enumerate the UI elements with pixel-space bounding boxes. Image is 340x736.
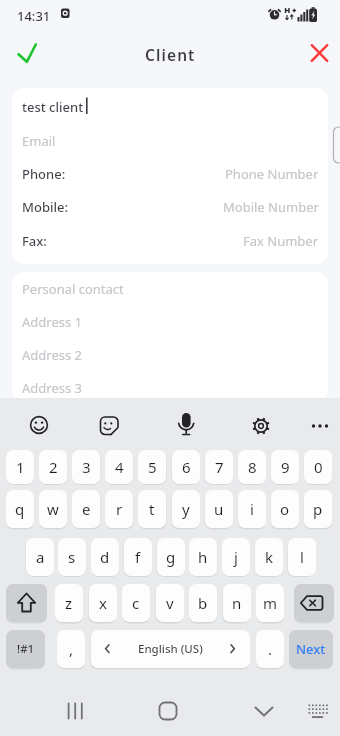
staticText: p	[313, 499, 323, 519]
button[interactable]	[12, 40, 42, 68]
staticText: 7	[215, 457, 224, 477]
button[interactable]	[12, 90, 328, 123]
button[interactable]	[304, 410, 336, 442]
button[interactable]: c	[122, 584, 150, 622]
staticText: test client	[22, 98, 84, 116]
button[interactable]	[55, 693, 95, 729]
staticText: x	[99, 593, 107, 613]
staticText: Address 2	[22, 346, 83, 364]
staticText: Personal contact	[22, 280, 124, 298]
staticText: English (US)	[138, 641, 203, 657]
staticText: w	[47, 499, 59, 519]
staticText: l	[300, 547, 304, 567]
button[interactable]: e	[72, 490, 100, 528]
button[interactable]: 4	[105, 450, 133, 484]
staticText: Mobile:	[22, 198, 68, 216]
button[interactable]: r	[105, 490, 133, 528]
button[interactable]: q	[6, 490, 34, 528]
button[interactable]: 2	[39, 450, 67, 484]
button[interactable]	[93, 410, 125, 442]
button[interactable]: 8	[238, 450, 266, 484]
staticText: Mobile Number	[223, 198, 319, 216]
staticText: Phone:	[22, 165, 66, 183]
button[interactable]: l	[288, 538, 316, 576]
button[interactable]: !#1	[6, 630, 45, 668]
staticText: Fax:	[22, 232, 47, 250]
staticText: Email	[22, 132, 56, 150]
staticText: 9	[281, 457, 290, 477]
button[interactable]: g	[157, 538, 185, 576]
button[interactable]	[148, 693, 188, 729]
button[interactable]: p	[304, 490, 332, 528]
staticText: 1	[16, 457, 25, 477]
button[interactable]: y	[172, 490, 200, 528]
staticText: r	[116, 499, 123, 519]
button[interactable]: 5	[138, 450, 166, 484]
staticText: q	[15, 499, 25, 519]
button[interactable]: n	[223, 584, 251, 622]
staticText: Next	[296, 640, 326, 658]
button[interactable]: z	[55, 584, 83, 622]
button[interactable]: f	[124, 538, 152, 576]
staticText: ,	[69, 639, 74, 659]
button[interactable]: x	[89, 584, 117, 622]
staticText: Fax Number	[243, 232, 319, 250]
button[interactable]: t	[138, 490, 166, 528]
button[interactable]	[23, 410, 55, 442]
staticText: n	[232, 593, 242, 613]
button[interactable]	[12, 157, 328, 190]
staticText: i	[250, 499, 254, 519]
button[interactable]: i	[238, 490, 266, 528]
staticText: 2	[49, 457, 58, 477]
button[interactable]: h	[189, 538, 217, 576]
button[interactable]	[306, 40, 334, 68]
button[interactable]	[91, 630, 250, 668]
button[interactable]: 9	[271, 450, 299, 484]
button[interactable]: .	[256, 630, 284, 668]
button[interactable]: k	[255, 538, 283, 576]
button[interactable]	[12, 223, 328, 256]
button[interactable]: j	[222, 538, 250, 576]
button[interactable]: 0	[304, 450, 332, 484]
button[interactable]: v	[156, 584, 184, 622]
button[interactable]	[12, 190, 328, 223]
button[interactable]: a	[26, 538, 54, 576]
staticText: e	[82, 499, 91, 519]
staticText: j	[234, 547, 238, 567]
button[interactable]: w	[39, 490, 67, 528]
staticText: g	[166, 547, 176, 567]
button[interactable]	[244, 693, 284, 729]
button[interactable]	[294, 584, 334, 622]
button[interactable]	[245, 410, 277, 442]
staticText: 6	[182, 457, 191, 477]
staticText: u	[214, 499, 224, 519]
staticText: m	[263, 593, 278, 613]
staticText: b	[198, 593, 208, 613]
staticText: t	[149, 499, 155, 519]
button[interactable]: 6	[172, 450, 200, 484]
button[interactable]	[170, 410, 202, 442]
button[interactable]: Next	[289, 630, 333, 668]
staticText: Phone Number	[225, 165, 319, 183]
staticText: o	[280, 499, 290, 519]
button[interactable]: 7	[205, 450, 233, 484]
staticText: Address 3	[22, 379, 83, 397]
staticText: c	[132, 593, 140, 613]
button[interactable]	[300, 695, 334, 727]
staticText: k	[265, 547, 274, 567]
button[interactable]	[12, 124, 328, 157]
button[interactable]: m	[256, 584, 284, 622]
button[interactable]: b	[189, 584, 217, 622]
button[interactable]: 3	[72, 450, 100, 484]
button[interactable]: d	[91, 538, 119, 576]
staticText: a	[36, 547, 45, 567]
staticText: y	[182, 499, 190, 519]
button[interactable]	[6, 584, 47, 622]
button[interactable]: o	[271, 490, 299, 528]
button[interactable]: u	[205, 490, 233, 528]
staticText: v	[166, 593, 174, 613]
button[interactable]: s	[58, 538, 86, 576]
button[interactable]: 1	[6, 450, 34, 484]
staticText: 4	[115, 457, 124, 477]
button[interactable]: ,	[57, 630, 85, 668]
